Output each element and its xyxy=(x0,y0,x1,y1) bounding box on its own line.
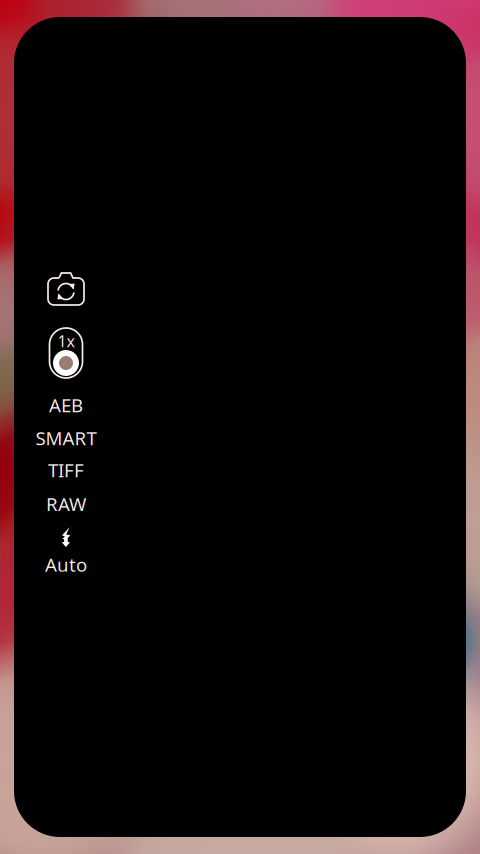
button[interactable]: Zoom 1x xyxy=(18,324,114,382)
staticText: TIFF xyxy=(48,458,84,482)
button[interactable]: RAW xyxy=(18,489,114,519)
button[interactable]: Flash Auto xyxy=(18,526,114,578)
button[interactable]: Switch camera xyxy=(18,267,114,311)
staticText: Auto xyxy=(45,552,87,577)
button[interactable]: SMART xyxy=(18,423,114,453)
button[interactable]: AEB xyxy=(18,390,114,420)
staticText: AEB xyxy=(49,393,83,417)
staticText: SMART xyxy=(35,426,96,450)
staticText: RAW xyxy=(46,492,86,516)
staticText: 1x xyxy=(57,330,74,352)
button[interactable]: TIFF xyxy=(18,455,114,485)
